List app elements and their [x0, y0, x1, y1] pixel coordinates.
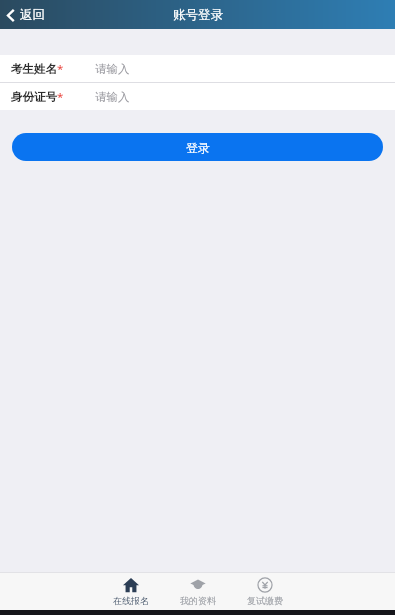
- button[interactable]: 身份证号*: [0, 83, 395, 110]
- button[interactable]: My profile: [175, 577, 221, 606]
- staticText: 请输入: [95, 62, 130, 76]
- staticText: 账号登录: [173, 7, 223, 23]
- staticText: 登录: [186, 140, 210, 155]
- button[interactable]: Home: [108, 577, 154, 606]
- staticText: 我的资料: [180, 595, 216, 606]
- button[interactable]: Back: [0, 3, 55, 27]
- staticText: 返回: [20, 7, 45, 23]
- button[interactable]: 登录: [12, 133, 383, 161]
- staticText: 考生姓名*: [11, 61, 64, 77]
- button[interactable]: Payment: [242, 577, 288, 606]
- staticText: 身份证号*: [11, 89, 64, 105]
- staticText: 复试缴费: [247, 595, 283, 606]
- button[interactable]: 考生姓名*: [0, 55, 395, 82]
- staticText: 请输入: [95, 90, 130, 104]
- other: Back: [7, 9, 15, 22]
- staticText: 在线报名: [113, 595, 149, 606]
